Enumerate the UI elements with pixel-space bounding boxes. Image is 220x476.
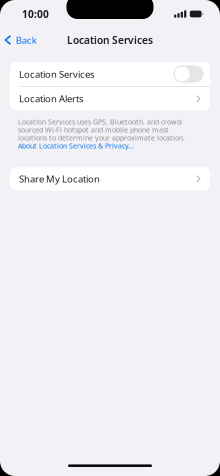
- staticText: 10:00: [22, 7, 49, 21]
- button[interactable]: Location Services: [10, 62, 210, 86]
- staticText: Location Alerts: [19, 92, 84, 105]
- staticText: Location Services: [19, 68, 95, 80]
- button[interactable]: Location Alerts: [10, 87, 210, 111]
- staticText: Location Services: [67, 33, 153, 47]
- staticText: About Location Services & Privacy...: [18, 142, 134, 150]
- button[interactable]: Back: [0, 30, 43, 50]
- button[interactable]: Share My Location: [10, 167, 210, 191]
- button[interactable]: About Location Services & Privacy...: [18, 142, 194, 150]
- staticText: Share My Location: [19, 172, 100, 185]
- staticText: Back: [16, 33, 37, 47]
- staticText: Location Services uses GPS, Bluetooth, a…: [18, 118, 185, 142]
